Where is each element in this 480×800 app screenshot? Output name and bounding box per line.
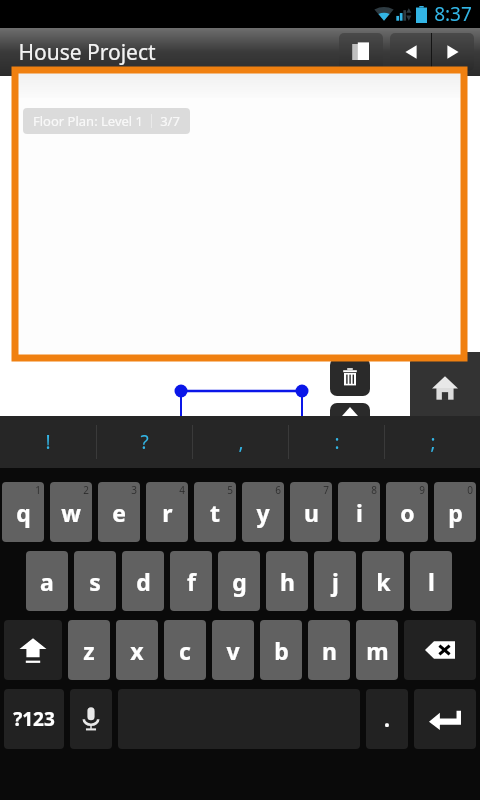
button[interactable]: t <box>194 482 236 542</box>
button[interactable]: w <box>50 482 92 542</box>
staticText: 6 <box>275 483 281 497</box>
button[interactable]: Floor Plan: Level 1 <box>33 112 180 130</box>
staticText: 2 <box>83 483 89 497</box>
staticText: d <box>136 566 151 597</box>
button[interactable]: l <box>410 551 452 611</box>
staticText: 1 <box>35 483 41 497</box>
button[interactable]: g <box>218 551 260 611</box>
staticText: f <box>187 566 196 597</box>
staticText: m <box>366 635 389 666</box>
button[interactable]: p <box>434 482 476 542</box>
button[interactable]: f <box>170 551 212 611</box>
staticText: j <box>332 566 339 597</box>
staticText: , <box>238 429 244 455</box>
button[interactable]: Previous <box>390 33 431 71</box>
staticText: k <box>376 566 391 597</box>
button[interactable]: , <box>193 416 288 468</box>
staticText: b <box>274 635 289 666</box>
staticText: 8:37 <box>434 1 472 27</box>
button[interactable]: q <box>2 482 44 542</box>
button[interactable]: o <box>386 482 428 542</box>
staticText: 3 <box>131 483 137 497</box>
staticText: : <box>334 429 340 455</box>
button[interactable]: v <box>212 620 254 680</box>
button[interactable]: Enter <box>414 689 476 749</box>
button[interactable]: e <box>98 482 140 542</box>
button[interactable]: ? <box>97 416 192 468</box>
button[interactable]: d <box>122 551 164 611</box>
button[interactable]: r <box>146 482 188 542</box>
staticText: y <box>256 497 270 528</box>
button[interactable]: : <box>289 416 384 468</box>
staticText: v <box>226 635 240 666</box>
button[interactable]: b <box>260 620 302 680</box>
button[interactable]: Home <box>410 352 480 416</box>
staticText: s <box>89 566 101 597</box>
staticText: x <box>130 635 144 666</box>
button[interactable]: a <box>26 551 68 611</box>
button[interactable]: Next <box>432 33 474 71</box>
button[interactable]: h <box>266 551 308 611</box>
button[interactable]: n <box>308 620 350 680</box>
button[interactable]: u <box>290 482 332 542</box>
button[interactable]: ?123 <box>4 689 64 749</box>
staticText: 8 <box>371 483 377 497</box>
button[interactable]: Shift <box>4 620 62 680</box>
staticText: 9 <box>419 483 425 497</box>
staticText: 4 <box>179 483 185 497</box>
button[interactable]: Pages <box>339 33 383 71</box>
staticText: ! <box>45 429 51 455</box>
button[interactable]: . <box>366 689 408 749</box>
button[interactable]: j <box>314 551 356 611</box>
button[interactable]: s <box>74 551 116 611</box>
button[interactable]: z <box>68 620 110 680</box>
staticText: p <box>448 497 463 528</box>
staticText: ; <box>430 429 436 455</box>
staticText: r <box>162 497 173 528</box>
button[interactable]: m <box>356 620 398 680</box>
staticText: e <box>112 497 126 528</box>
button[interactable]: ! <box>0 416 96 468</box>
staticText: u <box>304 497 319 528</box>
staticText: t <box>210 497 220 528</box>
staticText: Floor Plan: Level 1 <box>33 112 143 130</box>
staticText: n <box>322 635 337 666</box>
staticText: . <box>384 705 390 734</box>
button[interactable]: k <box>362 551 404 611</box>
staticText: 7 <box>323 483 329 497</box>
staticText: ?123 <box>13 706 55 732</box>
staticText: House Project <box>18 38 156 67</box>
staticText: l <box>428 566 435 597</box>
staticText: 0 <box>467 483 473 497</box>
staticText: ? <box>140 429 149 455</box>
button[interactable]: x <box>116 620 158 680</box>
staticText: 5 <box>227 483 233 497</box>
staticText: g <box>232 566 247 597</box>
button[interactable]: i <box>338 482 380 542</box>
staticText: c <box>179 635 191 666</box>
button[interactable]: Delete <box>330 358 370 396</box>
button[interactable]: Voice input <box>70 689 112 749</box>
button[interactable]: c <box>164 620 206 680</box>
staticText: i <box>356 497 363 528</box>
staticText: 3/7 <box>160 112 180 130</box>
staticText: a <box>40 566 54 597</box>
staticText: w <box>61 497 81 528</box>
button[interactable]: Collapse <box>330 403 370 423</box>
staticText: q <box>16 497 31 528</box>
button[interactable]: ; <box>385 416 480 468</box>
staticText: o <box>400 497 415 528</box>
button[interactable]: Backspace <box>404 620 476 680</box>
staticText: h <box>280 566 295 597</box>
staticText: z <box>83 635 95 666</box>
button[interactable]: y <box>242 482 284 542</box>
